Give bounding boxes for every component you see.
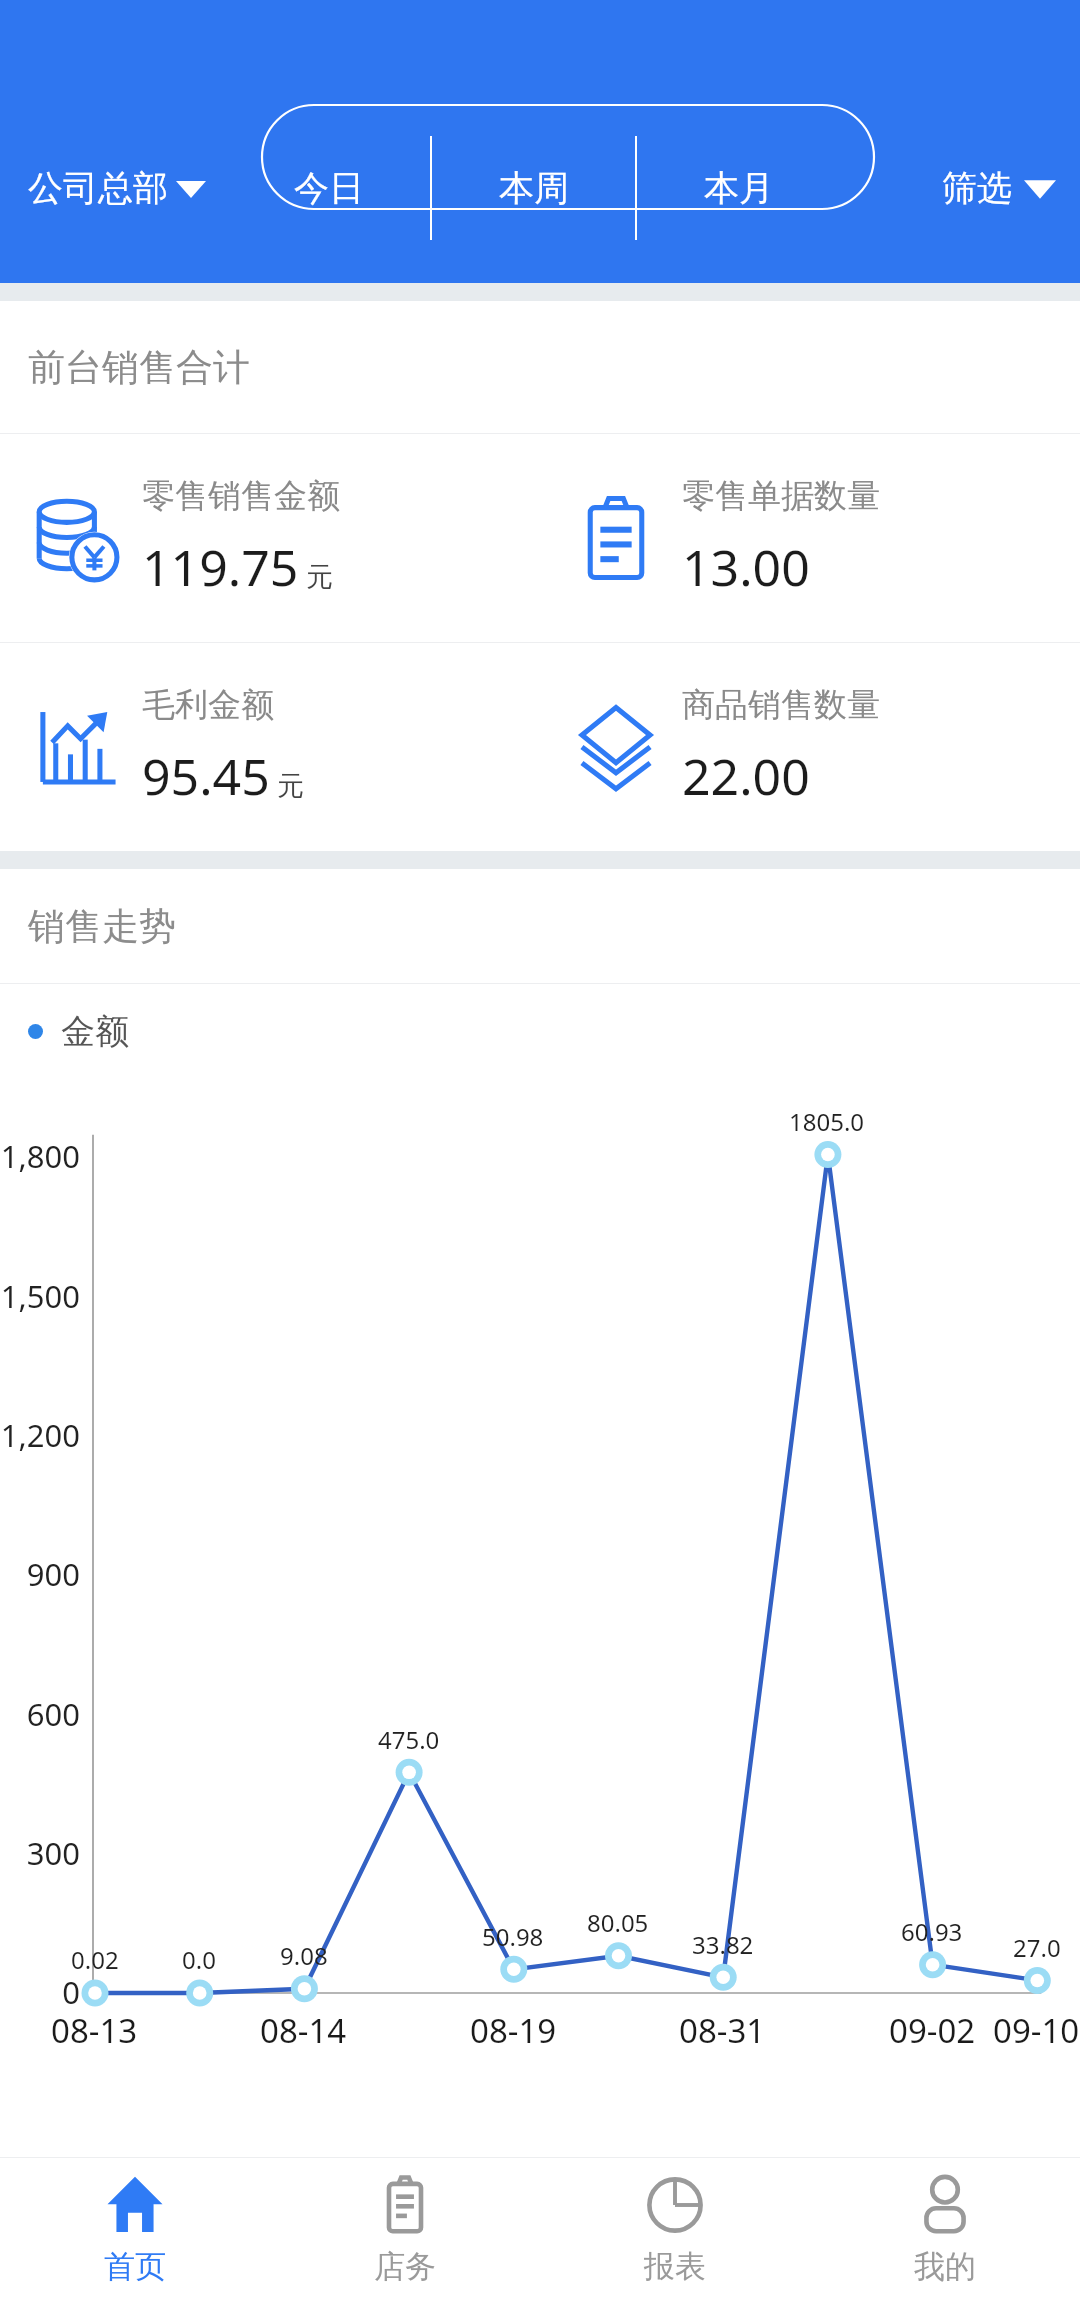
staticText: 今日 [294,166,364,210]
staticText: 08-14 [260,2008,347,2053]
staticText: 本月 [704,166,774,210]
button[interactable]: 今日 [228,136,430,240]
button[interactable]: 零售单据数量 [540,434,1080,642]
staticText: 公司总部 [28,166,168,210]
staticText: 1,200 [0,1414,80,1456]
other: 店务 [373,2173,437,2237]
button[interactable]: 报表 [540,2158,810,2300]
staticText: 22.00 [682,742,810,810]
staticText: 08-19 [470,2008,557,2053]
other: 我的 [913,2173,977,2237]
staticText: 首页 [104,2247,166,2286]
staticText: 我的 [914,2247,976,2286]
staticText: 报表 [644,2247,706,2286]
staticText: 元 [277,769,304,803]
staticText: 1,800 [0,1135,80,1177]
staticText: 商品销售数量 [682,684,880,726]
staticText: 09-10 [993,2008,1080,2053]
staticText: 店务 [374,2247,436,2286]
staticText: 前台销售合计 [28,344,250,391]
staticText: 0 [62,1971,80,2013]
staticText: 元 [306,560,333,594]
button[interactable]: 我的 [810,2158,1080,2300]
staticText: 300 [26,1832,80,1874]
staticText: 1805.0 [789,1105,865,1138]
other: 首页 [103,2173,167,2237]
staticText: 零售销售金额 [142,475,340,517]
button[interactable]: 毛利金额 [0,643,540,851]
staticText: 09-02 [889,2008,976,2053]
staticText: 27.0 [1013,1931,1061,1964]
staticText: 销售走势 [28,903,176,950]
staticText: 95.45 [142,742,270,810]
staticText: 9.08 [280,1939,328,1972]
staticText: 33.82 [692,1928,754,1961]
button[interactable]: 公司总部 [28,166,206,210]
staticText: 900 [26,1553,80,1595]
staticText: 80.05 [587,1906,649,1939]
staticText: 600 [26,1693,80,1735]
staticText: 0.0 [182,1943,216,1976]
other: 报表 [643,2173,707,2237]
staticText: 零售单据数量 [682,475,880,517]
staticText: 50.98 [482,1920,544,1953]
button[interactable]: 本周 [432,136,635,240]
staticText: 08-31 [679,2008,766,2053]
button[interactable]: 商品销售数量 [540,643,1080,851]
button[interactable]: 零售销售金额 [0,434,540,642]
button[interactable]: 本月 [637,136,840,240]
staticText: 119.75 [142,533,299,601]
button[interactable]: 店务 [270,2158,540,2300]
staticText: 0.02 [71,1943,119,1976]
staticText: 1,500 [0,1275,80,1317]
staticText: 筛选 [942,166,1012,210]
staticText: 金额 [61,1010,129,1053]
staticText: 60.93 [901,1915,963,1948]
staticText: 475.0 [378,1723,440,1756]
staticText: 13.00 [682,533,810,601]
button[interactable]: 筛选 [942,166,1056,210]
staticText: 毛利金额 [142,684,274,726]
staticText: 本周 [499,166,569,210]
button[interactable]: 首页 [0,2158,270,2300]
staticText: 08-13 [51,2008,138,2053]
